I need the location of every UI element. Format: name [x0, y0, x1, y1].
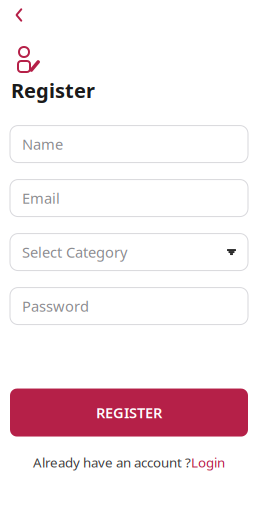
staticText: Select Category — [22, 242, 127, 262]
staticText: Name — [22, 134, 63, 154]
button[interactable]: Already have an account ? — [0, 454, 258, 471]
staticText: Email — [22, 188, 60, 208]
staticText: Login — [191, 454, 225, 471]
staticText: REGISTER — [96, 403, 162, 422]
button[interactable]: REGISTER — [10, 389, 248, 437]
staticText: Register — [11, 77, 95, 104]
staticText: Password — [22, 296, 89, 316]
button[interactable]: Back — [6, 2, 32, 28]
staticText: Already have an account ? — [33, 454, 191, 471]
